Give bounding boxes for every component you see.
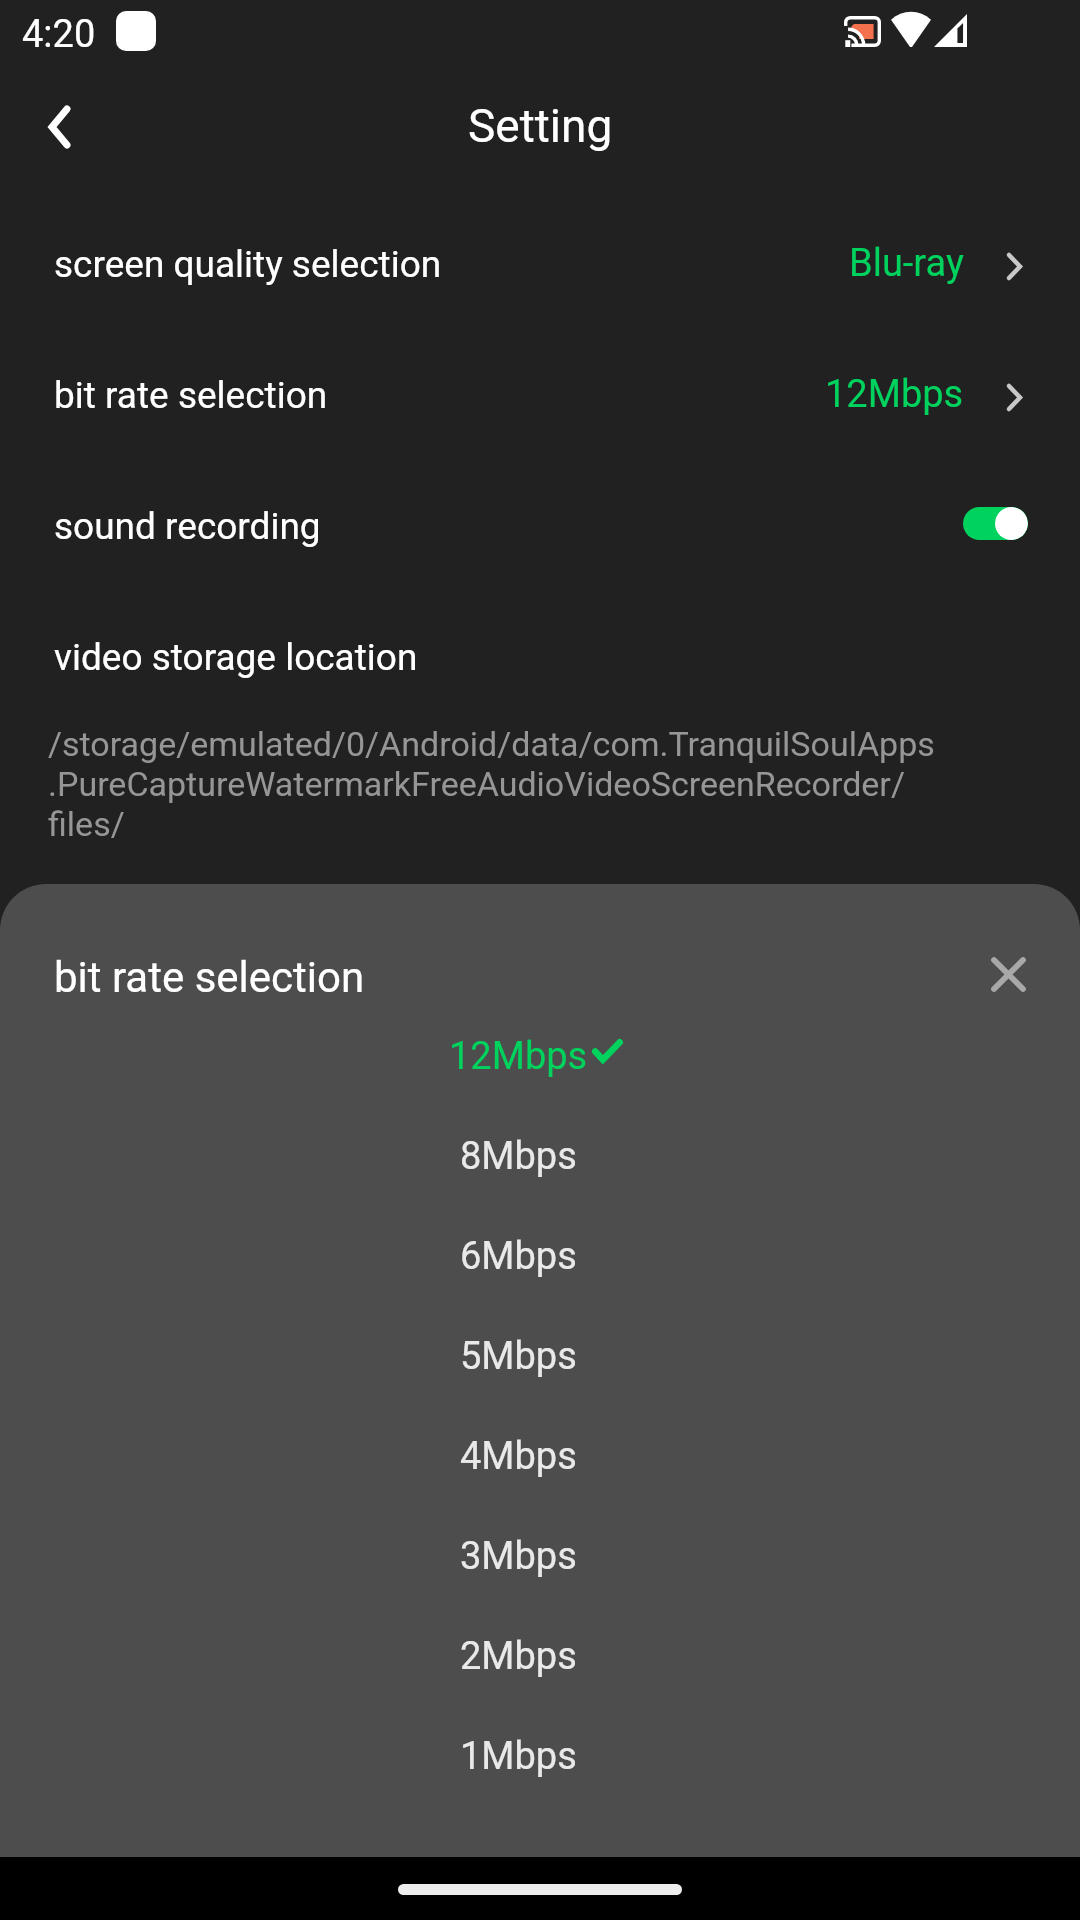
button[interactable]: 12Mbps <box>0 1006 1080 1106</box>
staticText: 8Mbps <box>460 1134 577 1179</box>
button[interactable]: Close <box>977 942 1039 1004</box>
staticText: Setting <box>468 99 613 153</box>
staticText: Blu-ray <box>849 241 964 286</box>
staticText: bit rate selection <box>54 374 328 417</box>
button[interactable]: sound recording <box>0 459 1080 590</box>
staticText: 1Mbps <box>460 1734 577 1779</box>
staticText: 3Mbps <box>460 1534 577 1579</box>
staticText: /storage/emulated/0/Android/data/com.Tra… <box>48 724 1008 844</box>
button[interactable]: Sound recording on <box>963 507 1028 540</box>
staticText: 12Mbps <box>449 1034 588 1079</box>
button[interactable]: Back <box>10 81 102 173</box>
staticText: bit rate selection <box>54 953 365 1002</box>
button[interactable]: 2Mbps <box>0 1606 1080 1706</box>
button[interactable]: video storage location <box>0 590 1080 721</box>
button[interactable]: 4Mbps <box>0 1406 1080 1506</box>
staticText: 4:20 <box>22 12 96 57</box>
button[interactable]: 6Mbps <box>0 1206 1080 1306</box>
button[interactable]: 5Mbps <box>0 1306 1080 1406</box>
staticText: 5Mbps <box>460 1334 577 1379</box>
button[interactable]: screen quality selection <box>0 197 1080 328</box>
staticText: video storage location <box>54 636 418 679</box>
staticText: 2Mbps <box>460 1634 577 1679</box>
button[interactable]: 8Mbps <box>0 1106 1080 1206</box>
staticText: screen quality selection <box>54 243 442 286</box>
button[interactable]: 1Mbps <box>0 1706 1080 1806</box>
staticText: 4Mbps <box>460 1434 577 1479</box>
button[interactable]: 3Mbps <box>0 1506 1080 1606</box>
staticText: sound recording <box>54 505 321 548</box>
staticText: 6Mbps <box>460 1234 577 1279</box>
button[interactable]: bit rate selection <box>0 328 1080 459</box>
staticText: 12Mbps <box>825 372 964 417</box>
